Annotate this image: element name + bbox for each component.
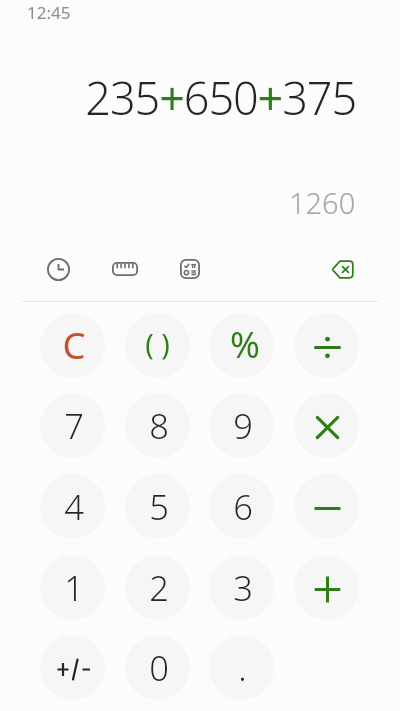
staticText: % xyxy=(230,320,260,369)
button[interactable]: 4 xyxy=(40,474,105,539)
button[interactable]: 5 xyxy=(125,474,190,539)
staticText: 12:45 xyxy=(27,1,71,24)
button[interactable]: History xyxy=(38,249,78,289)
staticText: 4 xyxy=(64,483,84,530)
staticText: C xyxy=(62,320,86,370)
staticText: 1260 xyxy=(289,183,356,222)
button[interactable]: Backspace xyxy=(322,249,362,289)
staticText: 1 xyxy=(64,564,84,611)
button[interactable]: 9 xyxy=(209,393,274,458)
button[interactable]: Unit converter xyxy=(105,249,145,289)
staticText: 8 xyxy=(149,402,169,449)
staticText: 235+650+375 xyxy=(85,67,356,128)
button[interactable]: 3 xyxy=(209,555,274,620)
staticText: 5 xyxy=(149,483,169,530)
button[interactable]: Plus minus xyxy=(40,635,105,700)
button[interactable]: 7 xyxy=(40,393,105,458)
staticText: 6 xyxy=(233,483,253,530)
button[interactable]: 6 xyxy=(209,474,274,539)
staticText: 9 xyxy=(233,402,253,449)
button[interactable]: Plus xyxy=(294,555,359,620)
button[interactable]: 0 xyxy=(125,635,190,700)
button[interactable]: C xyxy=(40,313,105,378)
button[interactable]: % xyxy=(209,313,274,378)
button[interactable]: 8 xyxy=(125,393,190,458)
button[interactable]: Divide xyxy=(294,313,359,378)
button[interactable]: ( ) xyxy=(125,313,190,378)
button[interactable]: Minus xyxy=(294,474,359,539)
staticText: 0 xyxy=(149,644,169,691)
staticText: 7 xyxy=(64,402,84,449)
button[interactable]: 1 xyxy=(40,555,105,620)
staticText: ( ) xyxy=(145,325,170,364)
button[interactable]: . xyxy=(209,635,274,700)
staticText: . xyxy=(238,644,247,691)
staticText: 3 xyxy=(233,564,253,611)
button[interactable]: Scientific calculator xyxy=(170,249,210,289)
button[interactable]: Multiply xyxy=(294,393,359,458)
staticText: 2 xyxy=(149,564,169,611)
button[interactable]: 2 xyxy=(125,555,190,620)
